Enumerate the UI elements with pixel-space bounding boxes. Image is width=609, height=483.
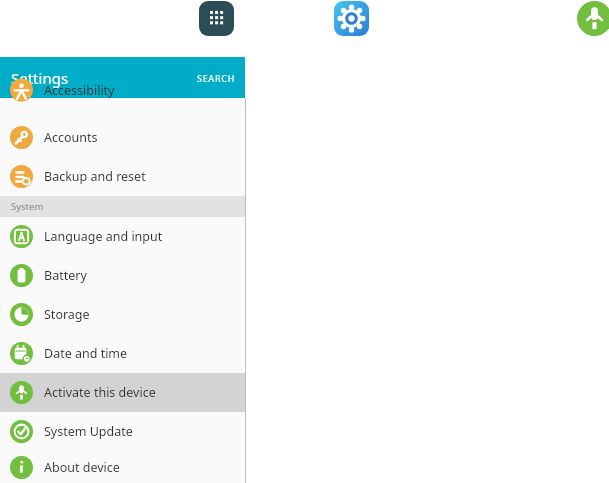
staticText: SEARCH [197,72,236,84]
button[interactable]: Storage [0,295,245,334]
button[interactable]: Activate this device [577,1,609,36]
staticText: About device [44,459,120,476]
staticText: Storage [44,306,90,323]
staticText: Language and input [44,228,163,245]
staticText: Battery [44,267,87,284]
button[interactable]: Accessibility [0,98,245,118]
button[interactable]: Settings [334,1,369,36]
staticText: Backup and reset [44,168,146,185]
button[interactable]: Activate this device [0,373,245,412]
staticText: System Update [44,423,133,440]
staticText: Date and time [44,345,128,362]
staticText: Accounts [44,129,98,146]
staticText: System [11,200,44,213]
button[interactable]: Language and input [0,217,245,256]
button[interactable]: Accounts [0,118,245,157]
button[interactable]: SEARCH [188,63,245,93]
button[interactable]: System Update [0,412,245,451]
button[interactable]: Backup and reset [0,157,245,196]
staticText: Activate this device [44,384,156,401]
staticText: Accessibility [44,82,115,99]
button[interactable]: About device [0,451,245,483]
button[interactable]: Battery [0,256,245,295]
button[interactable]: Date and time [0,334,245,373]
button[interactable]: Apps [199,1,234,36]
staticText: Settings [11,68,69,88]
